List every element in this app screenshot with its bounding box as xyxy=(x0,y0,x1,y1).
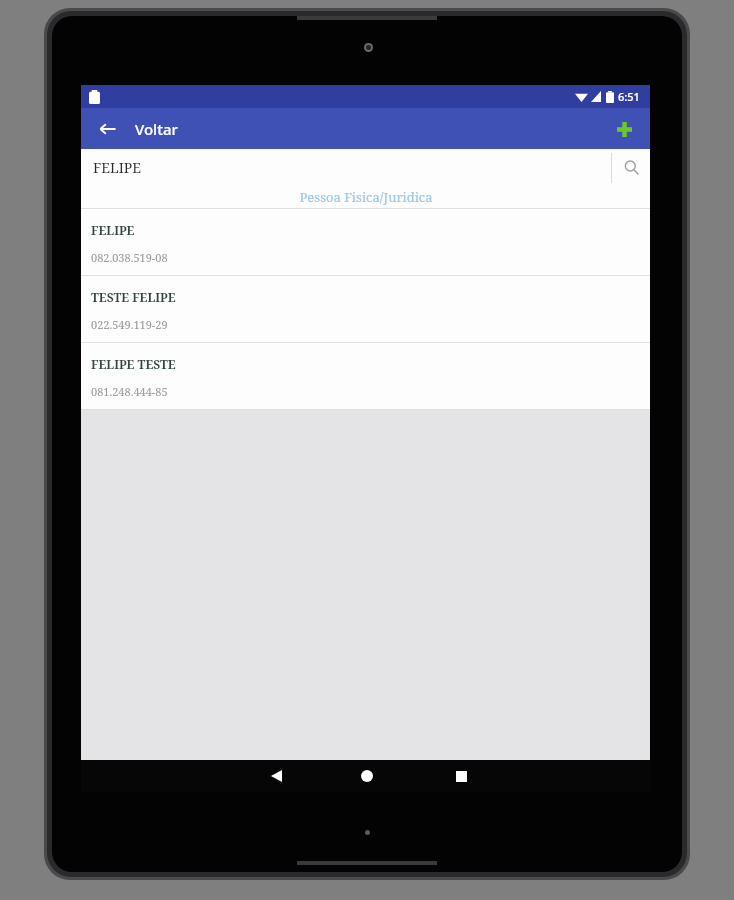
button[interactable]: FELIPE TESTE xyxy=(81,343,650,410)
button[interactable]: Home xyxy=(337,760,397,792)
button[interactable]: Recent apps xyxy=(431,760,491,792)
button[interactable]: FELIPE xyxy=(81,149,611,186)
staticText: FELIPE xyxy=(93,158,142,177)
button[interactable]: Back xyxy=(95,115,182,143)
staticText: 6:51 xyxy=(618,89,640,104)
staticText: Voltar xyxy=(135,119,178,139)
staticText: 022.549.119-29 xyxy=(91,317,168,332)
staticText: FELIPE xyxy=(91,222,135,238)
button[interactable]: Add xyxy=(612,117,636,141)
staticText: 082.038.519-08 xyxy=(91,250,168,265)
button[interactable]: FELIPE xyxy=(81,209,650,276)
staticText: TESTE FELIPE xyxy=(91,289,176,305)
button[interactable]: Back xyxy=(246,760,306,792)
button[interactable]: Search xyxy=(612,149,650,186)
button[interactable]: TESTE FELIPE xyxy=(81,276,650,343)
staticText: FELIPE TESTE xyxy=(91,356,176,372)
staticText: 081.248.444-85 xyxy=(91,384,168,399)
button[interactable]: Pessoa Fisica/Juridica xyxy=(81,186,650,208)
staticText: Pessoa Fisica/Juridica xyxy=(299,188,433,206)
